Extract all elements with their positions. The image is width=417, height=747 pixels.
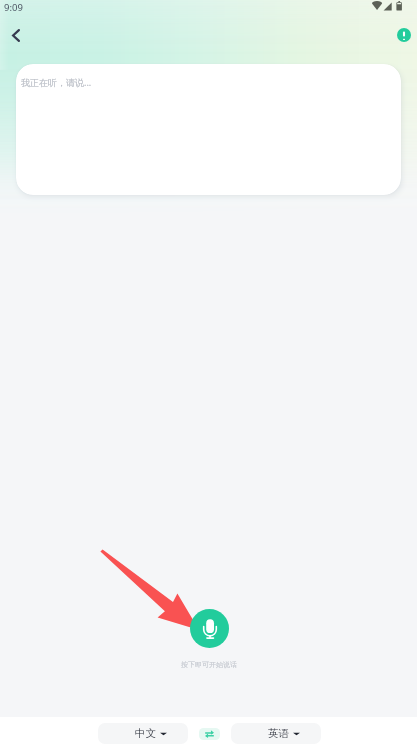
staticText: 9:09 xyxy=(4,1,23,14)
button[interactable]: Microphone, hold to talk xyxy=(190,609,229,648)
button[interactable]: Info xyxy=(391,22,417,48)
staticText: 中文 xyxy=(135,727,156,740)
button[interactable]: 我正在听，请说... xyxy=(16,64,401,195)
button[interactable]: 英语 xyxy=(231,723,321,744)
staticText: 按下即可开始说话 xyxy=(181,660,237,669)
staticText: 英语 xyxy=(268,727,289,740)
staticText: 我正在听，请说... xyxy=(21,76,92,88)
button[interactable]: 中文 xyxy=(98,723,188,744)
button[interactable]: Swap languages xyxy=(199,723,220,744)
button[interactable]: Back xyxy=(0,20,31,51)
